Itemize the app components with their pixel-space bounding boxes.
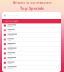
button[interactable] [2,28,61,33]
button[interactable] [2,56,61,60]
staticText: Welcome to our restaurant [12,1,51,5]
button[interactable] [2,37,61,42]
button[interactable] [2,61,61,65]
staticText: Today's Special Offer [4,20,19,22]
staticText: Search the menu [7,15,19,16]
button[interactable] [2,42,61,47]
button[interactable] [2,65,61,70]
button[interactable]: Today's Special Offer [2,19,61,23]
button[interactable] [2,33,61,37]
staticText: Top Specials [20,6,44,11]
button[interactable] [2,51,61,56]
button[interactable] [2,47,61,51]
button[interactable] [2,23,61,28]
button[interactable]: Search the menu [2,12,61,19]
